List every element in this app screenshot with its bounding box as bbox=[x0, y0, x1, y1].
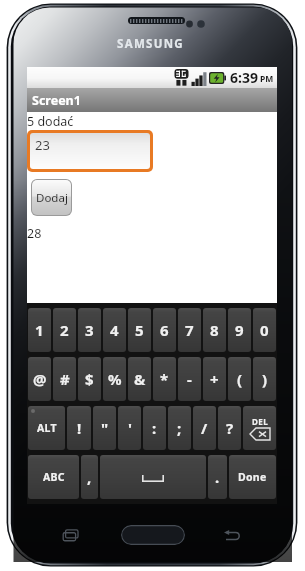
button[interactable]: , bbox=[81, 455, 98, 499]
staticText: - bbox=[187, 369, 192, 389]
staticText: ; bbox=[177, 418, 182, 438]
button[interactable]: 9 bbox=[228, 308, 251, 352]
button[interactable]: Recent apps bbox=[62, 527, 82, 543]
button[interactable]: " bbox=[93, 406, 116, 450]
button[interactable]: / bbox=[193, 406, 216, 450]
button[interactable]: ! bbox=[67, 406, 91, 450]
staticText: & bbox=[134, 369, 146, 389]
button[interactable]: ' bbox=[118, 406, 141, 450]
button[interactable]: 8 bbox=[203, 308, 226, 352]
button[interactable]: ALT bbox=[28, 406, 65, 450]
button[interactable]: ? bbox=[218, 406, 241, 450]
staticText: PM bbox=[260, 73, 274, 85]
button[interactable]: 0 bbox=[253, 308, 276, 352]
button[interactable]: 3 bbox=[78, 308, 101, 352]
staticText: 2 bbox=[60, 320, 69, 340]
staticText: 0 bbox=[260, 320, 269, 340]
button[interactable]: . bbox=[208, 455, 227, 499]
staticText: ? bbox=[226, 418, 234, 438]
staticText: ! bbox=[77, 418, 82, 438]
staticText: Screen1 bbox=[32, 92, 81, 109]
staticText: 8 bbox=[210, 320, 219, 340]
button[interactable]: % bbox=[103, 357, 126, 401]
button[interactable]: 7 bbox=[178, 308, 201, 352]
staticText: 7 bbox=[185, 320, 194, 340]
button[interactable]: 5 bbox=[128, 308, 151, 352]
button[interactable]: Dodaj bbox=[32, 180, 71, 215]
staticText: . bbox=[215, 467, 220, 487]
staticText: Dodaj bbox=[36, 190, 68, 206]
staticText: , bbox=[87, 467, 92, 487]
button[interactable]: ; bbox=[168, 406, 191, 450]
staticText: 4 bbox=[110, 320, 119, 340]
staticText: SAMSUNG bbox=[117, 36, 184, 52]
button[interactable]: @ bbox=[28, 357, 51, 401]
button[interactable]: ( bbox=[228, 357, 251, 401]
staticText: 1 bbox=[35, 320, 44, 340]
button[interactable]: : bbox=[143, 406, 166, 450]
staticText: * bbox=[160, 369, 169, 389]
button[interactable]: ) bbox=[253, 357, 276, 401]
staticText: 6:39 bbox=[230, 68, 258, 87]
button[interactable]: 23 bbox=[30, 133, 150, 169]
staticText: @ bbox=[33, 369, 47, 389]
staticText: $ bbox=[85, 369, 94, 389]
button[interactable]: Delete bbox=[243, 406, 276, 450]
button[interactable]: # bbox=[53, 357, 76, 401]
staticText: : bbox=[152, 418, 157, 438]
button[interactable]: 2 bbox=[53, 308, 76, 352]
staticText: / bbox=[201, 418, 208, 438]
button[interactable]: $ bbox=[78, 357, 101, 401]
staticText: " bbox=[101, 418, 109, 438]
staticText: ABC bbox=[43, 470, 65, 484]
staticText: 9 bbox=[235, 320, 244, 340]
button[interactable]: 6 bbox=[153, 308, 176, 352]
staticText: 28 bbox=[27, 225, 42, 242]
staticText: 6 bbox=[160, 320, 169, 340]
button[interactable]: Back bbox=[222, 527, 242, 543]
staticText: # bbox=[60, 369, 70, 389]
staticText: 3 bbox=[85, 320, 94, 340]
button[interactable]: * bbox=[153, 357, 176, 401]
button[interactable]: - bbox=[178, 357, 201, 401]
button[interactable]: 1 bbox=[28, 308, 51, 352]
staticText: % bbox=[108, 369, 122, 389]
staticText: ' bbox=[128, 418, 132, 438]
staticText: 5 dodać bbox=[27, 113, 74, 130]
button[interactable]: ABC bbox=[28, 455, 79, 499]
staticText: DEL bbox=[252, 416, 269, 427]
button[interactable]: + bbox=[203, 357, 226, 401]
button[interactable]: Home bbox=[121, 525, 185, 545]
staticText: 5 bbox=[135, 320, 144, 340]
button[interactable]: Done bbox=[229, 455, 276, 499]
staticText: ) bbox=[262, 369, 268, 389]
button[interactable]: Space bbox=[100, 455, 206, 499]
staticText: ALT bbox=[37, 421, 57, 435]
staticText: ( bbox=[237, 369, 243, 389]
staticText: 23 bbox=[35, 136, 50, 154]
staticText: + bbox=[210, 369, 219, 389]
staticText: Done bbox=[238, 470, 267, 484]
button[interactable]: 4 bbox=[103, 308, 126, 352]
button[interactable]: & bbox=[128, 357, 151, 401]
